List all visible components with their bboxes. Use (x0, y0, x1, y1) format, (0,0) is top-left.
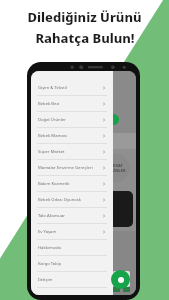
button[interactable]: İletişim (31, 272, 113, 287)
button[interactable]: Hesabım (108, 114, 119, 125)
staticText: Süper Market (38, 149, 65, 155)
button[interactable]: Ev Yaşam (31, 224, 113, 239)
staticText: Dilediğiniz Ürünü (27, 8, 142, 26)
button[interactable]: Mamalar Emzirme Gereçleri (31, 160, 113, 175)
staticText: İletişim (38, 277, 53, 283)
staticText: Kargo Takip (38, 261, 62, 267)
button[interactable]: Bebek Bezi (31, 96, 113, 111)
staticText: Giyim & Tekstil (38, 85, 67, 91)
button[interactable]: Giyim & Tekstil (31, 80, 113, 95)
staticText: FIRSAT ÜRÜNLER (106, 163, 126, 173)
button[interactable]: Hakkımızda (31, 240, 113, 255)
button[interactable]: Süper Market (31, 144, 113, 159)
button[interactable]: Tabı Aksesuar (31, 208, 113, 223)
button[interactable]: Bakım Kozmetik (31, 176, 113, 191)
staticText: Doğal Ürünler (38, 117, 66, 123)
button[interactable]: Bebek Maması (31, 128, 113, 143)
staticText: Ev Yaşam (38, 229, 57, 235)
staticText: Bakım Kozmetik (38, 181, 70, 187)
staticText: Bebek Odası Oyuncak (38, 197, 81, 203)
button[interactable]: Sepet (111, 270, 130, 289)
staticText: Tabı Aksesuar (38, 213, 66, 219)
staticText: Hakkımızda (38, 245, 61, 251)
staticText: Mamalar Emzirme Gereçleri (38, 165, 93, 171)
button[interactable]: Kargo Takip (31, 256, 113, 271)
button[interactable]: Doğal Ürünler (31, 112, 113, 127)
staticText: Bebek Bezi (38, 101, 60, 107)
staticText: Bebek Maması (38, 133, 67, 139)
staticText: Rahatça Bulun! (35, 29, 135, 47)
button[interactable]: Bebek Odası Oyuncak (31, 192, 113, 207)
